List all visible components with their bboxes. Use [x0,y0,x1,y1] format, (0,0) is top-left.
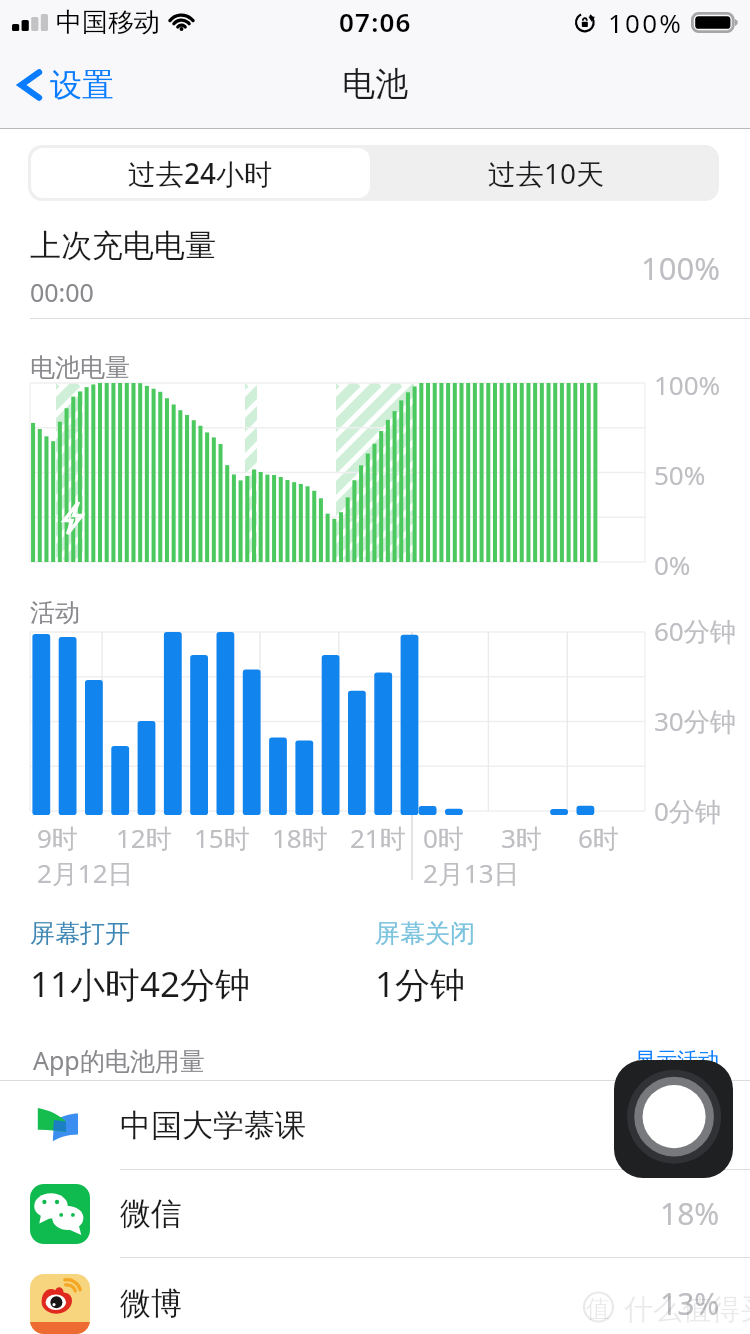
staticText: 0% [654,547,691,582]
staticText: 15时 [194,820,250,856]
button[interactable]: 过去24小时 [28,145,373,201]
staticText: 2月12日 [37,855,134,891]
staticText: 中国大学慕课 [120,1106,306,1145]
staticText: 18% [660,1193,720,1234]
staticText: 100% [641,247,720,289]
staticText: 100% [654,367,721,402]
staticText: 30分钟 [654,703,736,739]
button[interactable]: 显示活动 [635,1047,719,1073]
staticText: 6时 [578,820,619,856]
staticText: 0时 [423,820,464,856]
button[interactable]: 中国大学慕课 [0,1081,750,1170]
staticText: 9时 [37,820,78,856]
staticText: 3时 [501,820,542,856]
staticText: 显示活动 [635,1047,719,1073]
staticText: 07:06 [339,4,412,39]
staticText: 100% [608,5,684,40]
staticText: 中国移动 [56,6,160,39]
staticText: 60分钟 [654,613,736,649]
staticText: 上次充电电量 [30,226,216,265]
staticText: 12时 [116,820,172,856]
staticText: 屏幕关闭 [375,918,475,949]
staticText: 21时 [350,820,406,856]
staticText: 屏幕打开 [30,918,130,949]
staticText: 设置 [50,65,114,105]
staticText: 过去24小时 [128,154,273,192]
staticText: 什么值得买 [624,1291,750,1328]
staticText: 1分钟 [375,960,466,1008]
staticText: 50% [654,457,706,492]
button[interactable]: 微信 [0,1169,750,1258]
staticText: 13% [660,1283,720,1324]
button[interactable]: 设置 [10,59,124,115]
button[interactable]: 过去10天 [373,145,719,201]
staticText: 微博 [120,1284,182,1323]
button[interactable]: 微博 [0,1259,750,1334]
staticText: 11小时42分钟 [30,960,251,1008]
staticText: 2月13日 [423,855,520,891]
other: Rotation lock [576,12,597,33]
staticText: 微信 [120,1194,182,1233]
staticText: App的电池用量 [33,1043,205,1077]
staticText: 0分钟 [654,793,721,829]
staticText: 值 [586,1294,610,1324]
staticText: 电池电量 [30,352,130,383]
staticText: 00:00 [30,275,94,309]
staticText: 电池 [342,63,408,105]
staticText: 活动 [30,597,80,628]
staticText: 过去10天 [488,154,605,192]
staticText: 18时 [272,820,328,856]
